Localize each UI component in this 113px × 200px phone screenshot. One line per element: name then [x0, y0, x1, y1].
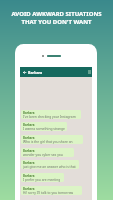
- staticText: just give me an answer who is that girl?: [23, 165, 79, 169]
- staticText: wonder you cyber sex you shopping: [23, 153, 74, 157]
- button[interactable]: Delete conversation: [87, 67, 92, 77]
- button[interactable]: Back: [21, 69, 27, 75]
- staticText: Barbara: [28, 70, 43, 75]
- staticText: Barbara: [23, 111, 35, 115]
- staticText: Barbara: [23, 161, 35, 165]
- staticText: I've been checking your Instagram profil…: [23, 115, 81, 119]
- staticText: I wanna something strange: [23, 127, 65, 131]
- button[interactable]: Barbara: [21, 160, 79, 169]
- staticText: AVOID AWKWARD SITUATIONS THAT YOU DON'T …: [0, 10, 113, 26]
- button[interactable]: Barbara: [21, 110, 81, 119]
- button[interactable]: Barbara: [21, 122, 67, 131]
- staticText: Barbara: [23, 136, 35, 140]
- staticText: Hi! sorry I'll talk to you tomorrow morn…: [23, 191, 82, 195]
- button[interactable]: Barbara: [21, 135, 83, 144]
- button[interactable]: Barbara: [21, 173, 64, 182]
- staticText: I prefer you are meeting: [23, 178, 61, 182]
- button[interactable]: Barbara: [21, 148, 74, 157]
- staticText: Barbara: [23, 149, 35, 153]
- staticText: Barbara: [23, 174, 35, 178]
- staticText: Barbara: [23, 123, 35, 127]
- staticText: Who is the girl that you share on Instag…: [23, 140, 83, 144]
- button[interactable]: Barbara: [21, 186, 82, 195]
- staticText: Barbara: [23, 187, 35, 191]
